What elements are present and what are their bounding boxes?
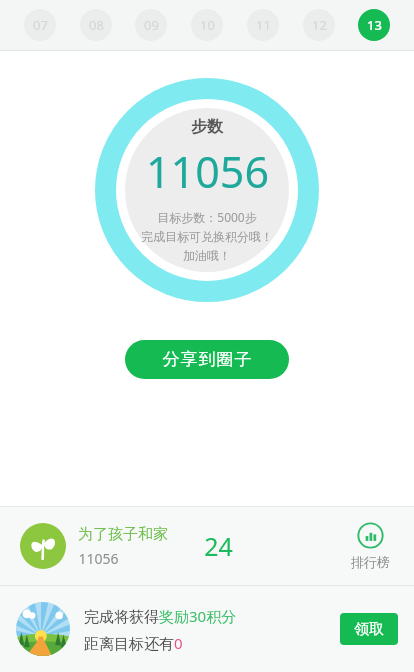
staticText: 11056	[146, 142, 269, 201]
staticText: 08	[89, 16, 104, 34]
button[interactable]: 分享到圈子	[125, 340, 289, 379]
staticText: 24	[204, 529, 233, 563]
staticText: 11056	[78, 549, 119, 568]
staticText: 09	[144, 16, 159, 34]
button[interactable]: 10	[191, 9, 223, 41]
staticText: 步数	[191, 117, 223, 137]
staticText: 12	[312, 16, 327, 34]
staticText: 11	[256, 16, 271, 34]
staticText: 10	[200, 16, 215, 34]
button[interactable]: 11	[247, 9, 279, 41]
staticText: 目标步数：5000步	[157, 209, 257, 225]
button[interactable]: 12	[303, 9, 335, 41]
button[interactable]: 07	[24, 9, 56, 41]
staticText: 完成目标可兑换积分哦！	[141, 229, 273, 244]
button[interactable]: 13	[358, 9, 390, 41]
button[interactable]: 08	[80, 9, 112, 41]
staticText: 排行榜	[351, 554, 390, 570]
staticText: 完成将获得奖励30积分	[84, 606, 237, 626]
staticText: 为了孩子和家	[78, 525, 168, 544]
button[interactable]: 为了孩子和家	[0, 507, 414, 585]
staticText: 13	[367, 16, 382, 34]
staticText: 领取	[354, 620, 384, 639]
staticText: 距离目标还有0	[84, 633, 183, 653]
staticText: 分享到圈子	[162, 349, 252, 370]
button[interactable]: 09	[135, 9, 167, 41]
staticText: 加油哦！	[183, 248, 231, 263]
button[interactable]: 排行榜	[347, 518, 394, 574]
staticText: 07	[33, 16, 48, 34]
button[interactable]: 领取	[340, 613, 398, 645]
